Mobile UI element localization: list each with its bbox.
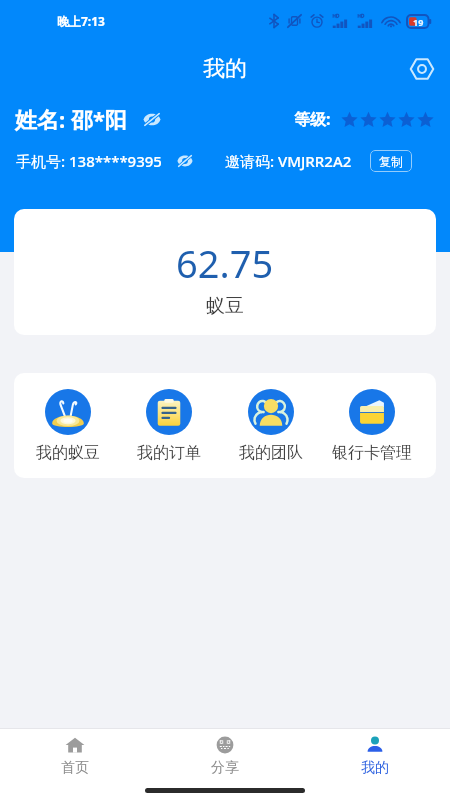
button[interactable]: Hide phone number: [174, 150, 196, 172]
button[interactable]: 我的团队: [225, 373, 317, 478]
staticText: 晚上7:13: [57, 13, 105, 29]
staticText: 邀请码:: [225, 151, 278, 171]
staticText: 138****9395: [69, 151, 162, 171]
staticText: 姓名: 邵*阳: [15, 104, 127, 134]
staticText: 我的: [361, 759, 389, 777]
staticText: 等级:: [294, 108, 331, 130]
button[interactable]: 我的: [300, 729, 450, 782]
staticText: 62.75: [176, 237, 274, 289]
button[interactable]: 62.75: [14, 209, 436, 335]
button[interactable]: 分享: [150, 729, 300, 782]
staticText: 我的团队: [239, 443, 303, 463]
staticText: 分享: [211, 759, 239, 777]
button[interactable]: Hide name: [139, 106, 165, 132]
staticText: 银行卡管理: [332, 443, 412, 463]
button[interactable]: 银行卡管理: [326, 373, 418, 478]
button[interactable]: 首页: [0, 729, 150, 782]
button[interactable]: 我的蚁豆: [22, 373, 114, 478]
staticText: 首页: [61, 759, 89, 777]
staticText: 19: [413, 16, 424, 28]
staticText: VMJRR2A2: [278, 151, 352, 171]
staticText: 手机号:: [16, 151, 69, 171]
staticText: 我的订单: [137, 443, 201, 463]
button[interactable]: Settings: [404, 51, 440, 87]
button[interactable]: 我的订单: [123, 373, 215, 478]
staticText: 蚁豆: [206, 294, 244, 318]
staticText: 复制: [379, 154, 403, 169]
button[interactable]: 复制: [370, 150, 412, 172]
staticText: 我的: [203, 55, 247, 83]
staticText: 我的蚁豆: [36, 443, 100, 463]
